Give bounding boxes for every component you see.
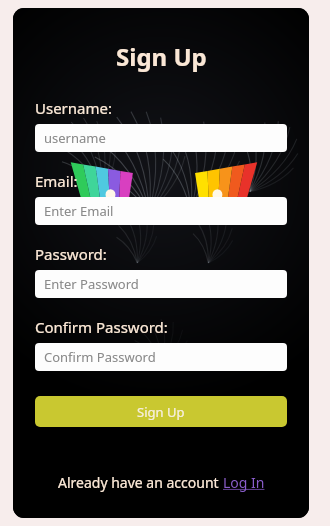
staticText: Log In: [223, 473, 265, 492]
staticText: Password:: [35, 244, 107, 264]
staticText: Confirm Password: [44, 348, 156, 366]
button[interactable]: Log In: [223, 473, 265, 492]
staticText: username: [44, 129, 106, 147]
button[interactable]: Sign Up: [35, 396, 287, 427]
staticText: Sign Up: [137, 403, 185, 421]
button[interactable]: Enter Password: [35, 270, 287, 298]
staticText: Confirm Password:: [35, 317, 168, 337]
button[interactable]: username: [35, 124, 287, 152]
staticText: Already have an account: [58, 473, 223, 492]
staticText: Username:: [35, 98, 112, 118]
staticText: Enter Password: [44, 275, 139, 293]
button[interactable]: Confirm Password: [35, 343, 287, 371]
staticText: Email:: [35, 171, 78, 191]
staticText: Enter Email: [44, 202, 114, 220]
button[interactable]: Enter Email: [35, 197, 287, 225]
staticText: Sign Up: [116, 40, 207, 73]
